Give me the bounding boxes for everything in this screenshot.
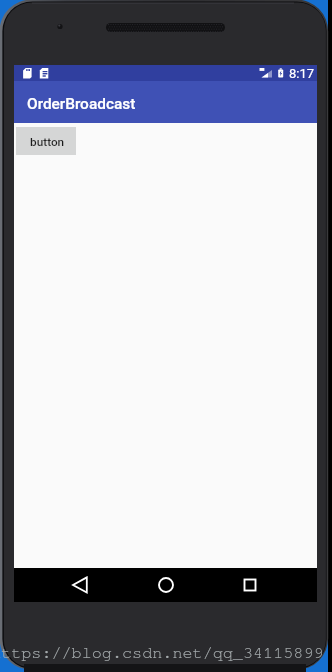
staticText: https://blog.csdn.net/qq_34115899 [0, 645, 323, 662]
staticText: button [30, 135, 65, 149]
staticText: OrderBroadcast [27, 95, 136, 113]
button[interactable]: button [16, 127, 76, 155]
staticText: 8:17 [289, 66, 315, 81]
button[interactable]: Recent apps [224, 568, 276, 602]
button[interactable]: Back [54, 568, 106, 602]
button[interactable]: Home [140, 568, 192, 602]
